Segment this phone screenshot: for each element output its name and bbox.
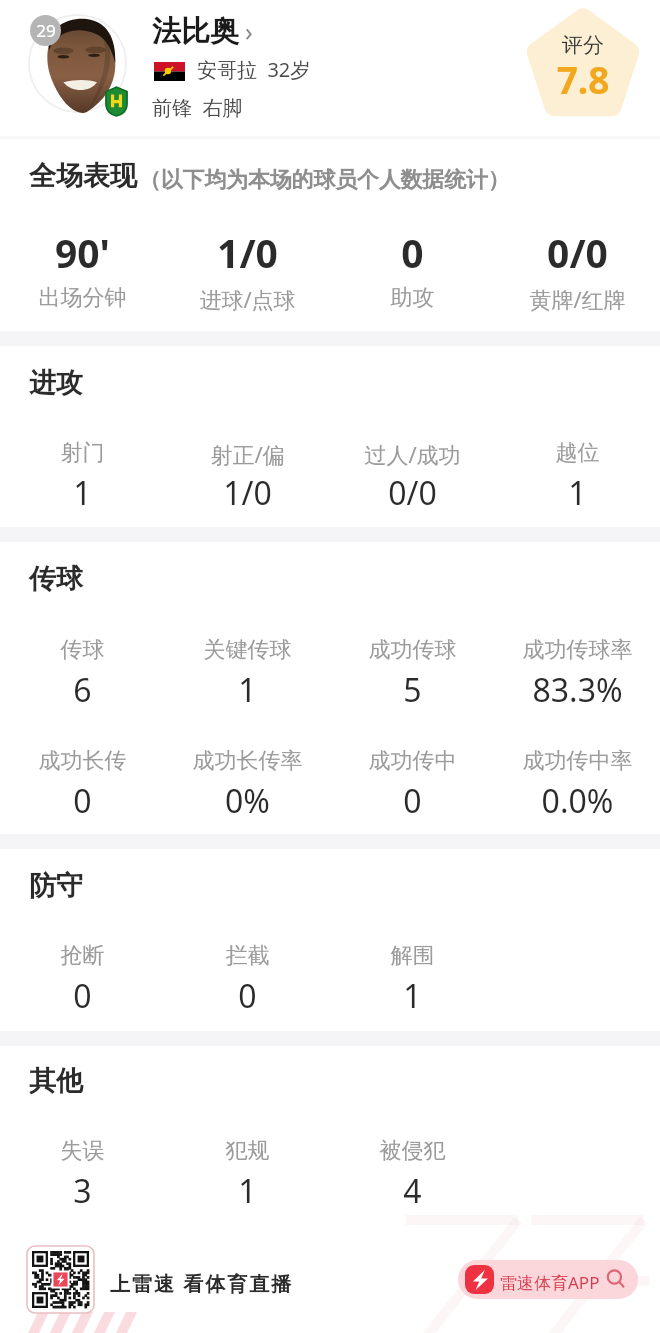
staticText: 关键传球: [165, 636, 330, 664]
staticText: 0.0%: [495, 779, 660, 823]
staticText: 4: [330, 1169, 495, 1213]
staticText: 0%: [165, 779, 330, 823]
staticText: 被侵犯: [330, 1137, 495, 1165]
staticText: 1: [165, 668, 330, 712]
staticText: 1: [0, 471, 165, 515]
staticText: 1: [495, 471, 660, 515]
staticText: 成功长传: [0, 747, 165, 775]
button[interactable]: Match rating 7.8: [522, 6, 644, 122]
staticText: 进攻: [29, 366, 83, 400]
staticText: 上雷速 看体育直播: [110, 1270, 294, 1297]
staticText: 3: [0, 1169, 165, 1213]
staticText: 1: [165, 1169, 330, 1213]
staticText: 5: [330, 668, 495, 712]
staticText: 1: [330, 974, 495, 1018]
staticText: 成功长传率: [165, 747, 330, 775]
staticText: 越位: [495, 439, 660, 467]
staticText: 黄牌/红牌: [495, 284, 660, 314]
staticText: 前锋 右脚: [152, 94, 243, 121]
staticText: 29: [36, 19, 56, 42]
staticText: 83.3%: [495, 668, 660, 712]
staticText: 进球/点球: [165, 284, 330, 314]
staticText: 0: [0, 779, 165, 823]
staticText: 防守: [29, 869, 83, 903]
staticText: 其他: [29, 1064, 83, 1098]
staticText: 0: [165, 974, 330, 1018]
staticText: 0: [0, 974, 165, 1018]
staticText: 失误: [0, 1137, 165, 1165]
staticText: 成功传中: [330, 747, 495, 775]
button[interactable]: 法比奥: [150, 10, 268, 48]
button[interactable]: Player photo: [28, 14, 127, 113]
staticText: 雷速体育APP: [500, 1271, 600, 1294]
staticText: 抢断: [0, 942, 165, 970]
staticText: 法比奥: [152, 13, 239, 50]
staticText: 射正/偏: [165, 439, 330, 469]
staticText: ›: [245, 14, 253, 48]
staticText: 安哥拉 32岁: [197, 56, 311, 83]
staticText: 1/0: [165, 471, 330, 515]
staticText: （以下均为本场的球员个人数据统计）: [139, 166, 510, 193]
staticText: 0/0: [330, 471, 495, 515]
staticText: 过人/成功: [330, 439, 495, 469]
staticText: 解围: [330, 942, 495, 970]
staticText: 6: [0, 668, 165, 712]
staticText: 90': [0, 226, 165, 279]
staticText: 成功传中率: [495, 747, 660, 775]
staticText: 0/0: [495, 226, 660, 279]
staticText: 评分: [522, 32, 644, 58]
staticText: 出场分钟: [0, 284, 165, 312]
staticText: 7.8: [522, 54, 644, 104]
staticText: 0: [330, 226, 495, 279]
staticText: 射门: [0, 439, 165, 467]
staticText: 传球: [0, 636, 165, 664]
staticText: 拦截: [165, 942, 330, 970]
staticText: 传球: [29, 562, 83, 596]
staticText: 0: [330, 779, 495, 823]
staticText: 1/0: [165, 226, 330, 279]
staticText: 成功传球: [330, 636, 495, 664]
button[interactable]: Scan QR code: [27, 1246, 94, 1313]
staticText: 全场表现: [29, 159, 137, 193]
staticText: 犯规: [165, 1137, 330, 1165]
staticText: 成功传球率: [495, 636, 660, 664]
staticText: 助攻: [330, 284, 495, 312]
button[interactable]: Search: [606, 1269, 626, 1289]
button[interactable]: 雷速体育APP: [458, 1260, 638, 1299]
